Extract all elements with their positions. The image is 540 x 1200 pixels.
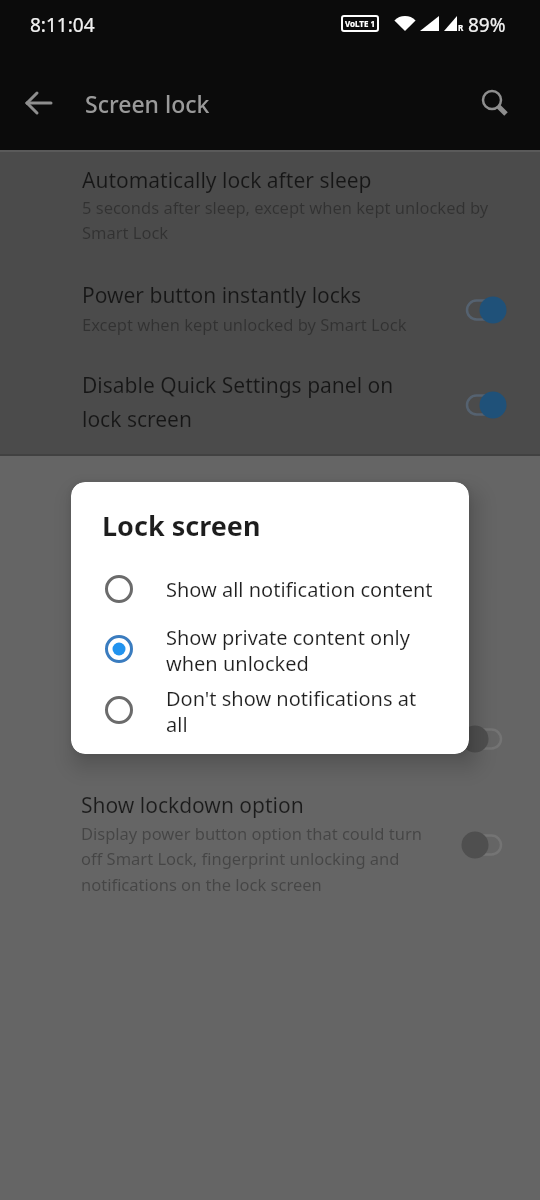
staticText: Power button instantly locks [82, 281, 362, 310]
button[interactable]: Show all notification content [71, 564, 469, 614]
staticText: Automatically lock after sleep [82, 166, 372, 195]
staticText: R [458, 22, 464, 33]
button[interactable] [470, 78, 520, 128]
staticText: Lock screen [102, 507, 261, 544]
button[interactable]: Power button instantly locks [0, 272, 540, 352]
button[interactable]: Automatically lock after sleep [0, 152, 540, 256]
button[interactable]: Don't show notifications at all [71, 682, 469, 744]
staticText: 89% [468, 12, 506, 38]
staticText: Disable Quick Settings panel on lock scr… [82, 371, 394, 433]
staticText: Show lockdown option [81, 791, 304, 820]
staticText: 5 seconds after sleep, except when kept … [82, 196, 489, 243]
button[interactable]: Show private content only when unlocked [71, 618, 469, 680]
staticText: Except when kept unlocked by Smart Lock [82, 313, 407, 335]
staticText: Screen lock [85, 88, 210, 119]
button[interactable]: Disable Quick Settings panel on lock scr… [0, 362, 540, 448]
staticText: Display power button option that could t… [81, 822, 422, 896]
staticText: VoLTE 1 [345, 18, 376, 29]
staticText: Show private content only when unlocked [166, 624, 410, 676]
staticText: Don't show notifications at all [166, 685, 417, 737]
staticText: 8:11:04 [30, 12, 95, 38]
staticText: Show all notification content [166, 576, 433, 603]
button[interactable] [14, 78, 64, 128]
button[interactable]: Show lockdown option [0, 786, 540, 906]
